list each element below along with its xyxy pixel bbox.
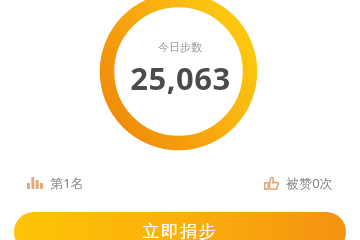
button[interactable]: Likes bbox=[264, 169, 333, 197]
staticText: 第1名 bbox=[50, 174, 84, 192]
staticText: 今日步数 bbox=[158, 40, 202, 54]
staticText: 被赞0次 bbox=[286, 174, 333, 192]
staticText: 25,063 bbox=[130, 57, 231, 99]
button[interactable]: 立即捐步 bbox=[14, 212, 346, 240]
button[interactable]: 第1名 bbox=[27, 169, 84, 197]
other: Likes bbox=[264, 177, 279, 190]
staticText: 立即捐步 bbox=[142, 221, 218, 240]
